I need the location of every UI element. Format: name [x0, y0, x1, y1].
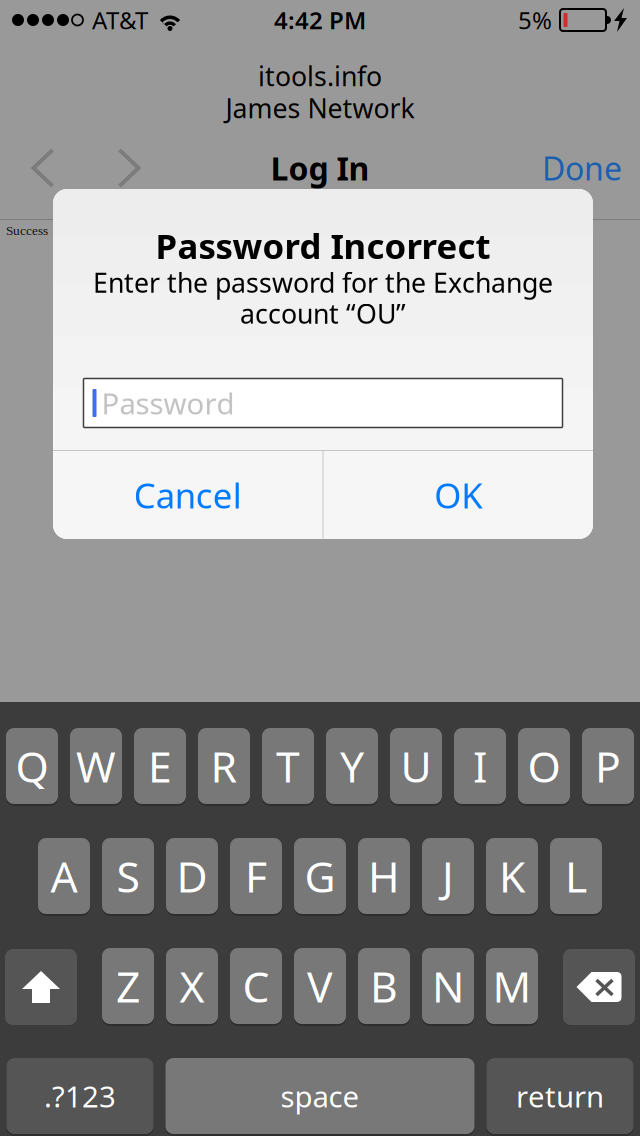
staticText: .?123	[44, 1076, 116, 1115]
button[interactable]: Z	[102, 948, 154, 1026]
button[interactable]: .?123	[6, 1058, 153, 1136]
button[interactable]: P	[582, 728, 634, 806]
button[interactable]: H	[358, 838, 410, 916]
button[interactable]: O	[518, 728, 570, 806]
button[interactable]: E	[134, 728, 186, 806]
button[interactable]: K	[486, 838, 538, 916]
button[interactable]: N	[422, 948, 474, 1026]
staticText: G	[304, 848, 335, 904]
staticText: C	[242, 958, 269, 1014]
button[interactable]: V	[294, 948, 346, 1026]
button[interactable]: L	[550, 838, 602, 916]
staticText: B	[370, 958, 398, 1014]
staticText: 4:42 PM	[274, 4, 366, 36]
staticText: Password	[101, 383, 234, 422]
staticText: D	[176, 848, 207, 904]
button[interactable]: space	[165, 1058, 474, 1136]
button[interactable]: U	[390, 728, 442, 806]
button[interactable]: Back	[0, 143, 86, 193]
button[interactable]: Y	[326, 728, 378, 806]
button[interactable]: F	[230, 838, 282, 916]
button[interactable]: D	[166, 838, 218, 916]
staticText: P	[595, 738, 621, 794]
staticText: Log In	[270, 147, 369, 189]
button[interactable]: G	[294, 838, 346, 916]
button[interactable]: C	[230, 948, 282, 1026]
staticText: space	[280, 1076, 359, 1115]
button[interactable]: return	[486, 1058, 633, 1136]
staticText: account “OU”	[240, 296, 406, 331]
staticText: Success	[6, 223, 48, 238]
button[interactable]: B	[358, 948, 410, 1026]
button[interactable]: I	[454, 728, 506, 806]
staticText: Q	[15, 738, 48, 794]
button[interactable]: Done	[524, 143, 640, 193]
button[interactable]: X	[166, 948, 218, 1026]
button[interactable]: OK	[323, 451, 593, 539]
button[interactable]: M	[486, 948, 538, 1026]
button[interactable]: S	[102, 838, 154, 916]
button[interactable]: R	[198, 728, 250, 806]
staticText: X	[179, 958, 204, 1014]
button[interactable]: J	[422, 838, 474, 916]
staticText: W	[76, 738, 116, 794]
staticText: O	[527, 738, 560, 794]
staticText: E	[148, 738, 172, 794]
button[interactable]: T	[262, 728, 314, 806]
staticText: return	[516, 1076, 604, 1115]
staticText: OK	[434, 472, 482, 518]
button[interactable]: Cancel	[53, 451, 322, 539]
staticText: Password Incorrect	[155, 222, 490, 268]
staticText: Cancel	[134, 472, 242, 518]
button[interactable]: W	[70, 728, 122, 806]
staticText: J	[442, 848, 454, 904]
staticText: M	[492, 958, 531, 1014]
staticText: F	[245, 848, 267, 904]
staticText: L	[565, 848, 587, 904]
staticText: itools.info	[258, 58, 382, 94]
staticText: Done	[542, 147, 622, 189]
staticText: Y	[340, 738, 364, 794]
staticText: 5%	[518, 4, 552, 36]
staticText: James Network	[225, 90, 414, 126]
button[interactable]: Q	[6, 728, 58, 806]
staticText: S	[116, 848, 139, 904]
button[interactable]: Delete	[563, 949, 635, 1025]
staticText: K	[499, 848, 525, 904]
button[interactable]: Forward	[86, 143, 172, 193]
staticText: R	[210, 738, 237, 794]
staticText: Z	[116, 958, 140, 1014]
button[interactable]: A	[38, 838, 90, 916]
staticText: AT&T	[92, 4, 148, 36]
button[interactable]: Shift	[5, 949, 77, 1025]
staticText: I	[473, 738, 487, 794]
staticText: H	[368, 848, 400, 904]
staticText: A	[50, 848, 77, 904]
staticText: Enter the password for the Exchange	[93, 265, 553, 300]
staticText: N	[432, 958, 464, 1014]
staticText: U	[400, 738, 431, 794]
staticText: V	[307, 958, 333, 1014]
staticText: T	[276, 738, 300, 794]
